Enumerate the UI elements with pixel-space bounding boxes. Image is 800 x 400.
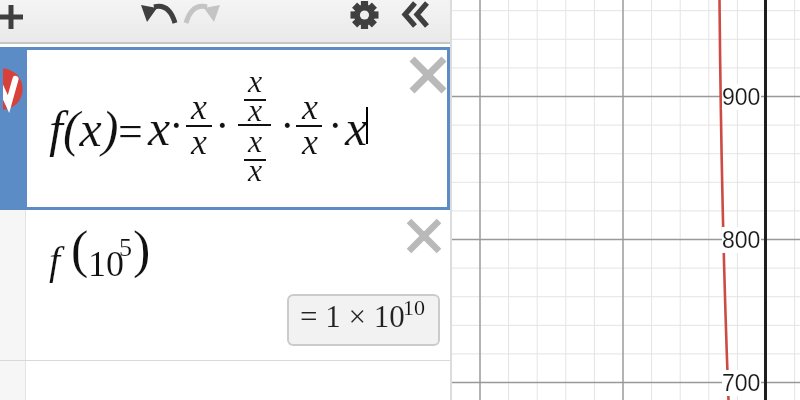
staticText: ( (71, 221, 89, 279)
staticText: 800 (722, 227, 761, 253)
staticText: · (215, 101, 230, 150)
staticText: = (118, 107, 143, 156)
staticText: x (248, 152, 263, 187)
button[interactable]: f (0, 210, 450, 361)
staticText: · (328, 101, 343, 150)
staticText: x (345, 100, 368, 155)
button[interactable]: = 1 × 10 (287, 294, 440, 346)
staticText: f(x) (49, 101, 119, 156)
staticText: f (49, 238, 61, 282)
staticText: x (148, 100, 171, 155)
button[interactable] (402, 1, 432, 29)
button[interactable] (407, 54, 449, 96)
staticText: · (280, 101, 295, 150)
staticText: = 1 × 10 (300, 299, 405, 333)
staticText: x (302, 87, 318, 127)
staticText: 10 (88, 244, 124, 284)
staticText: x (191, 122, 207, 162)
button[interactable]: f(x) (0, 47, 450, 210)
staticText: x (191, 87, 207, 127)
staticText: x (302, 122, 318, 162)
staticText: · (169, 101, 184, 150)
button[interactable] (0, 4, 24, 30)
button[interactable] (141, 3, 177, 27)
staticText: 700 (722, 370, 761, 396)
staticText: 5 (119, 233, 132, 262)
button[interactable] (184, 3, 220, 27)
staticText: x (248, 63, 263, 98)
staticText: ) (133, 221, 151, 279)
staticText: 900 (722, 84, 761, 110)
staticText: x (248, 123, 263, 158)
staticText: 10 (403, 295, 425, 319)
button[interactable] (404, 216, 444, 256)
button[interactable] (350, 1, 379, 30)
staticText: x (248, 92, 263, 127)
